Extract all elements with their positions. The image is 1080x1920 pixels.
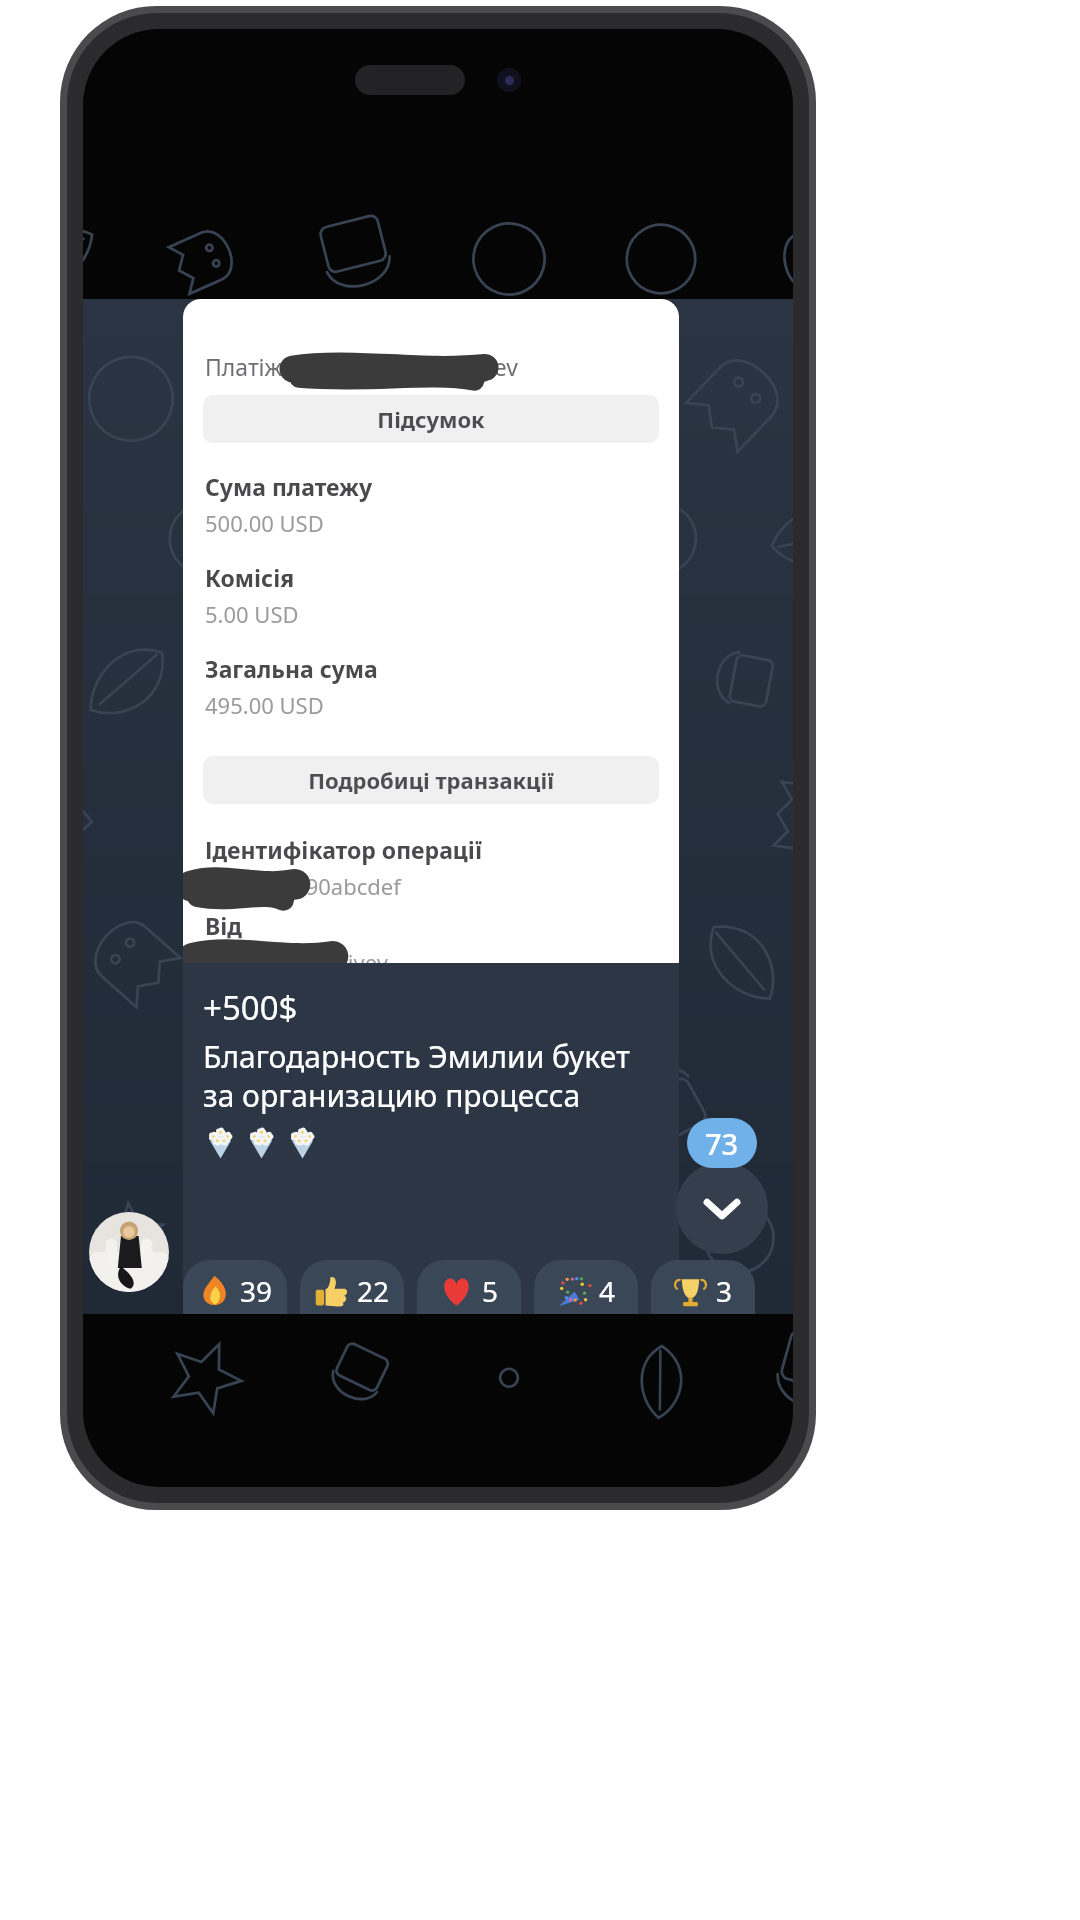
button[interactable]: Подробиці транзакції — [203, 756, 659, 804]
staticText: Благодарность Эмилии букет за организаци… — [203, 1036, 630, 1115]
button[interactable]: Scroll to bottom — [676, 1162, 768, 1254]
button[interactable]: Sender profile photo — [89, 1212, 169, 1292]
staticText: Підсумок — [377, 404, 485, 434]
staticText: Від — [205, 910, 242, 941]
staticText: 73 — [705, 1124, 739, 1163]
staticText: 5 — [482, 1272, 499, 1310]
button[interactable]: 22 — [300, 1260, 404, 1314]
staticText: Подробиці транзакції — [308, 765, 554, 795]
button[interactable]: 4 — [534, 1260, 638, 1314]
staticText: Сума платежу — [205, 471, 373, 502]
staticText: 500.00 USD — [205, 508, 324, 538]
button[interactable]: 39 — [183, 1260, 287, 1314]
staticText: Ідентифікатор операції — [205, 834, 482, 865]
staticText: 22 — [357, 1272, 390, 1310]
staticText: 1234567890abcdef — [205, 871, 401, 901]
staticText: 495.00 USD — [205, 690, 324, 720]
staticText: 5.00 USD — [205, 599, 299, 629]
staticText: Комісія — [205, 562, 295, 593]
staticText: 39 — [240, 1272, 273, 1310]
button[interactable]: Підсумок — [203, 395, 659, 443]
button[interactable]: 3 — [651, 1260, 755, 1314]
staticText: 4 — [599, 1272, 616, 1310]
staticText: Платіж від Oksana Dmitriyev — [205, 351, 518, 382]
staticText: Загальна сума — [205, 653, 378, 684]
staticText: 3 — [716, 1272, 733, 1310]
staticText: +500$ — [203, 985, 298, 1030]
button[interactable]: 5 — [417, 1260, 521, 1314]
staticText: Oksana Dmitriyev — [205, 947, 388, 963]
